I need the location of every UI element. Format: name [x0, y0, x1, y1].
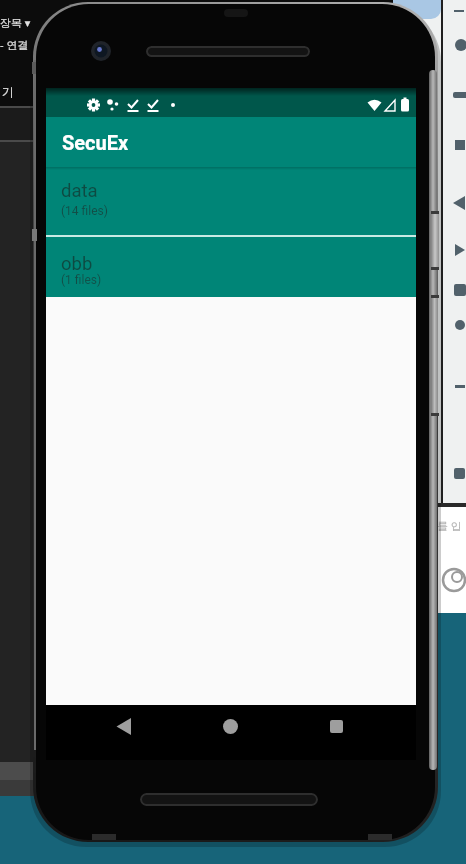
staticText: 를 입	[437, 518, 462, 533]
staticText: (1 files)	[61, 273, 102, 287]
button[interactable]: obb	[46, 237, 416, 297]
staticText: 장목 ▾	[0, 15, 31, 30]
staticText: - 연결	[0, 37, 29, 52]
staticText: 기	[2, 84, 14, 99]
button[interactable]	[206, 705, 254, 760]
button[interactable]	[312, 705, 360, 760]
staticText: (14 files)	[61, 204, 108, 218]
button[interactable]: SecuEx	[46, 117, 416, 167]
staticText: SecuEx	[62, 131, 129, 154]
button[interactable]: data	[46, 167, 416, 235]
button[interactable]	[100, 705, 148, 760]
staticText: data	[61, 180, 98, 202]
staticText: obb	[61, 253, 93, 275]
